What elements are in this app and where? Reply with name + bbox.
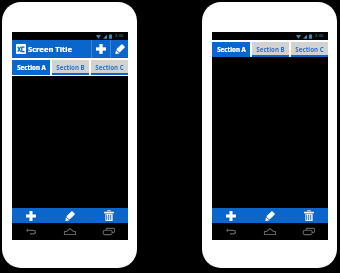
staticText: Section C [295, 45, 324, 53]
button[interactable]: Edit [250, 208, 289, 223]
button[interactable]: Home [50, 223, 89, 240]
staticText: 2:30 [315, 33, 324, 39]
button[interactable]: Home [250, 223, 289, 240]
button[interactable]: Edit [111, 40, 128, 58]
staticText: Section A [17, 63, 46, 71]
staticText: Section A [217, 45, 246, 53]
button[interactable]: Recents [289, 223, 328, 240]
button[interactable]: Section C [91, 60, 128, 75]
button[interactable]: Add [12, 208, 50, 223]
staticText: Section B [256, 45, 285, 53]
button[interactable]: Recents [89, 223, 128, 240]
button[interactable]: Section B [252, 42, 289, 57]
button[interactable]: Add [212, 208, 250, 223]
button[interactable]: Delete [289, 208, 328, 223]
button[interactable]: Back [12, 223, 50, 240]
button[interactable]: Section C [291, 42, 328, 57]
button[interactable]: Section B [52, 60, 89, 75]
button[interactable]: Add [92, 40, 110, 58]
button[interactable]: Section A [212, 42, 250, 57]
staticText: 2:30 [115, 33, 124, 39]
staticText: Screen Title [28, 44, 73, 54]
staticText: Section B [56, 63, 85, 71]
button[interactable]: Edit [50, 208, 89, 223]
button[interactable]: Section A [12, 60, 50, 75]
button[interactable]: Delete [89, 208, 128, 223]
staticText: Section C [95, 63, 124, 71]
button[interactable]: Back [212, 223, 250, 240]
